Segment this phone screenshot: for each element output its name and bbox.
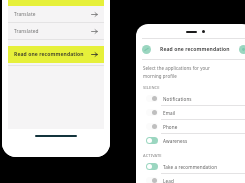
button[interactable]: Translate [8,6,104,22]
other: Open [91,51,98,58]
staticText: Read one recommendation [14,51,84,58]
button[interactable]: Notifications [141,92,245,105]
button[interactable]: Back [142,45,151,54]
staticText: ACTIVATE [143,153,162,158]
other: Open [91,28,98,35]
staticText: Select the applications for your [143,65,211,71]
staticText: morning profile [143,73,177,79]
button[interactable]: Read one recommendation [8,46,104,63]
button[interactable]: Take a recommendation [141,160,245,173]
staticText: Lead [163,178,244,183]
button[interactable]: Phone [141,120,245,133]
staticText: Translated [14,28,39,35]
staticText: Read one recommendation [160,46,230,53]
staticText: Awareness [163,138,244,144]
staticText: Notifications [163,96,244,102]
button[interactable]: Translated [8,23,104,39]
button[interactable]: Awareness [141,134,245,147]
staticText: Phone [163,124,244,130]
staticText: Translate [14,11,36,18]
staticText: SILENCE [143,85,160,90]
button[interactable]: Lead [141,174,245,183]
other: Open [91,11,98,18]
button[interactable]: More options [239,45,245,54]
staticText: Take a recommendation [163,164,244,170]
staticText: Email [163,110,244,116]
button[interactable]: Email [141,106,245,119]
